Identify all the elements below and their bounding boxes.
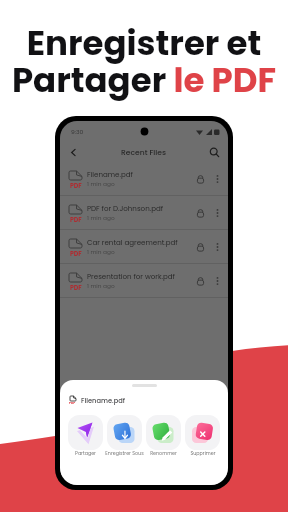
staticText: PDF — [70, 249, 82, 258]
button[interactable]: PDF — [60, 264, 228, 298]
staticText: PDF — [69, 401, 76, 405]
staticText: Enregistrer Sous — [105, 450, 144, 457]
other: Lock — [195, 208, 206, 219]
staticText: PDF — [70, 181, 82, 190]
staticText: Supprimer — [190, 450, 216, 457]
button[interactable]: More options — [215, 173, 220, 185]
button[interactable]: Search — [208, 146, 221, 159]
staticText: Filename.pdf — [81, 396, 125, 405]
button[interactable]: PDF — [60, 230, 228, 264]
button[interactable]: More options — [215, 241, 220, 253]
staticText: Filename.pdf — [87, 170, 133, 180]
other: Lock — [195, 242, 206, 253]
staticText: Presentation for work.pdf — [87, 272, 175, 282]
other: Lock — [195, 174, 206, 185]
staticText: PDF for D.Johnson.pdf — [87, 204, 164, 214]
staticText: PDF — [70, 283, 82, 292]
staticText: 1 min ago — [87, 214, 115, 222]
staticText: Car rental agreement.pdf — [87, 238, 178, 248]
staticText: 9:30 — [71, 128, 84, 136]
staticText: 1 min ago — [87, 248, 115, 256]
button[interactable]: Partager — [66, 415, 105, 457]
button[interactable]: Back — [67, 146, 80, 159]
button[interactable]: More options — [215, 207, 220, 219]
staticText: Enregistrer et — [0, 19, 288, 67]
staticText: Recent Files — [121, 147, 167, 158]
staticText: PDF — [70, 215, 82, 224]
staticText: Partager le PDF — [0, 56, 288, 104]
staticText: Renommer — [150, 450, 177, 457]
staticText: Partager — [75, 450, 96, 457]
staticText: 1 min ago — [87, 282, 115, 290]
other: Lock — [195, 276, 206, 287]
button[interactable]: PDF — [60, 162, 228, 196]
button[interactable]: More options — [215, 275, 220, 287]
staticText: 1 min ago — [87, 180, 115, 188]
button[interactable]: Supprimer — [183, 415, 222, 457]
button[interactable]: Enregistrer Sous — [105, 415, 144, 457]
button[interactable]: Renommer — [144, 415, 183, 457]
button[interactable]: PDF — [60, 196, 228, 230]
